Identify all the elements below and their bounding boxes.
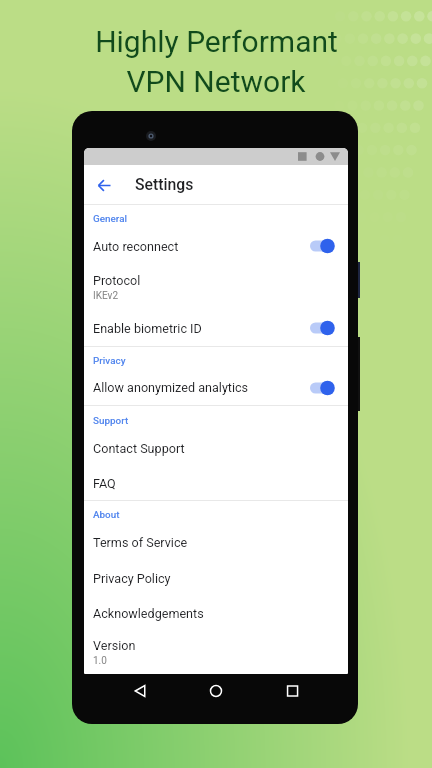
button[interactable]: Back [92, 173, 116, 197]
staticText: Settings [135, 175, 194, 194]
staticText: Enable biometric ID [93, 321, 310, 336]
staticText: About [93, 509, 120, 521]
button[interactable]: Privacy Policy [84, 560, 348, 596]
staticText: IKEv2 [93, 290, 119, 302]
button[interactable]: Contact Support [84, 430, 348, 466]
staticText: VPN Network [126, 64, 306, 99]
staticText: Privacy Policy [93, 571, 171, 586]
staticText: Support [93, 415, 129, 427]
staticText: FAQ [93, 476, 116, 491]
staticText: Protocol [93, 273, 141, 288]
staticText: Privacy [93, 355, 126, 367]
button[interactable]: Version [84, 631, 348, 674]
staticText: 1.0 [93, 655, 107, 667]
button[interactable]: Enable biometric ID [84, 310, 348, 346]
staticText: Terms of Service [93, 535, 188, 550]
staticText: Auto reconnect [93, 239, 310, 254]
staticText: Acknowledgements [93, 606, 204, 621]
staticText: Highly Performant [95, 24, 338, 59]
staticText: General [93, 213, 128, 225]
button[interactable]: Protocol [84, 264, 348, 310]
button[interactable]: Auto reconnect [84, 228, 348, 264]
staticText: Contact Support [93, 441, 185, 456]
button[interactable]: Acknowledgements [84, 596, 348, 631]
staticText: Allow anonymized analytics [93, 380, 310, 395]
button[interactable]: FAQ [84, 466, 348, 500]
button[interactable]: Allow anonymized analytics [84, 370, 348, 405]
button[interactable]: Terms of Service [84, 525, 348, 560]
staticText: Version [93, 638, 136, 653]
